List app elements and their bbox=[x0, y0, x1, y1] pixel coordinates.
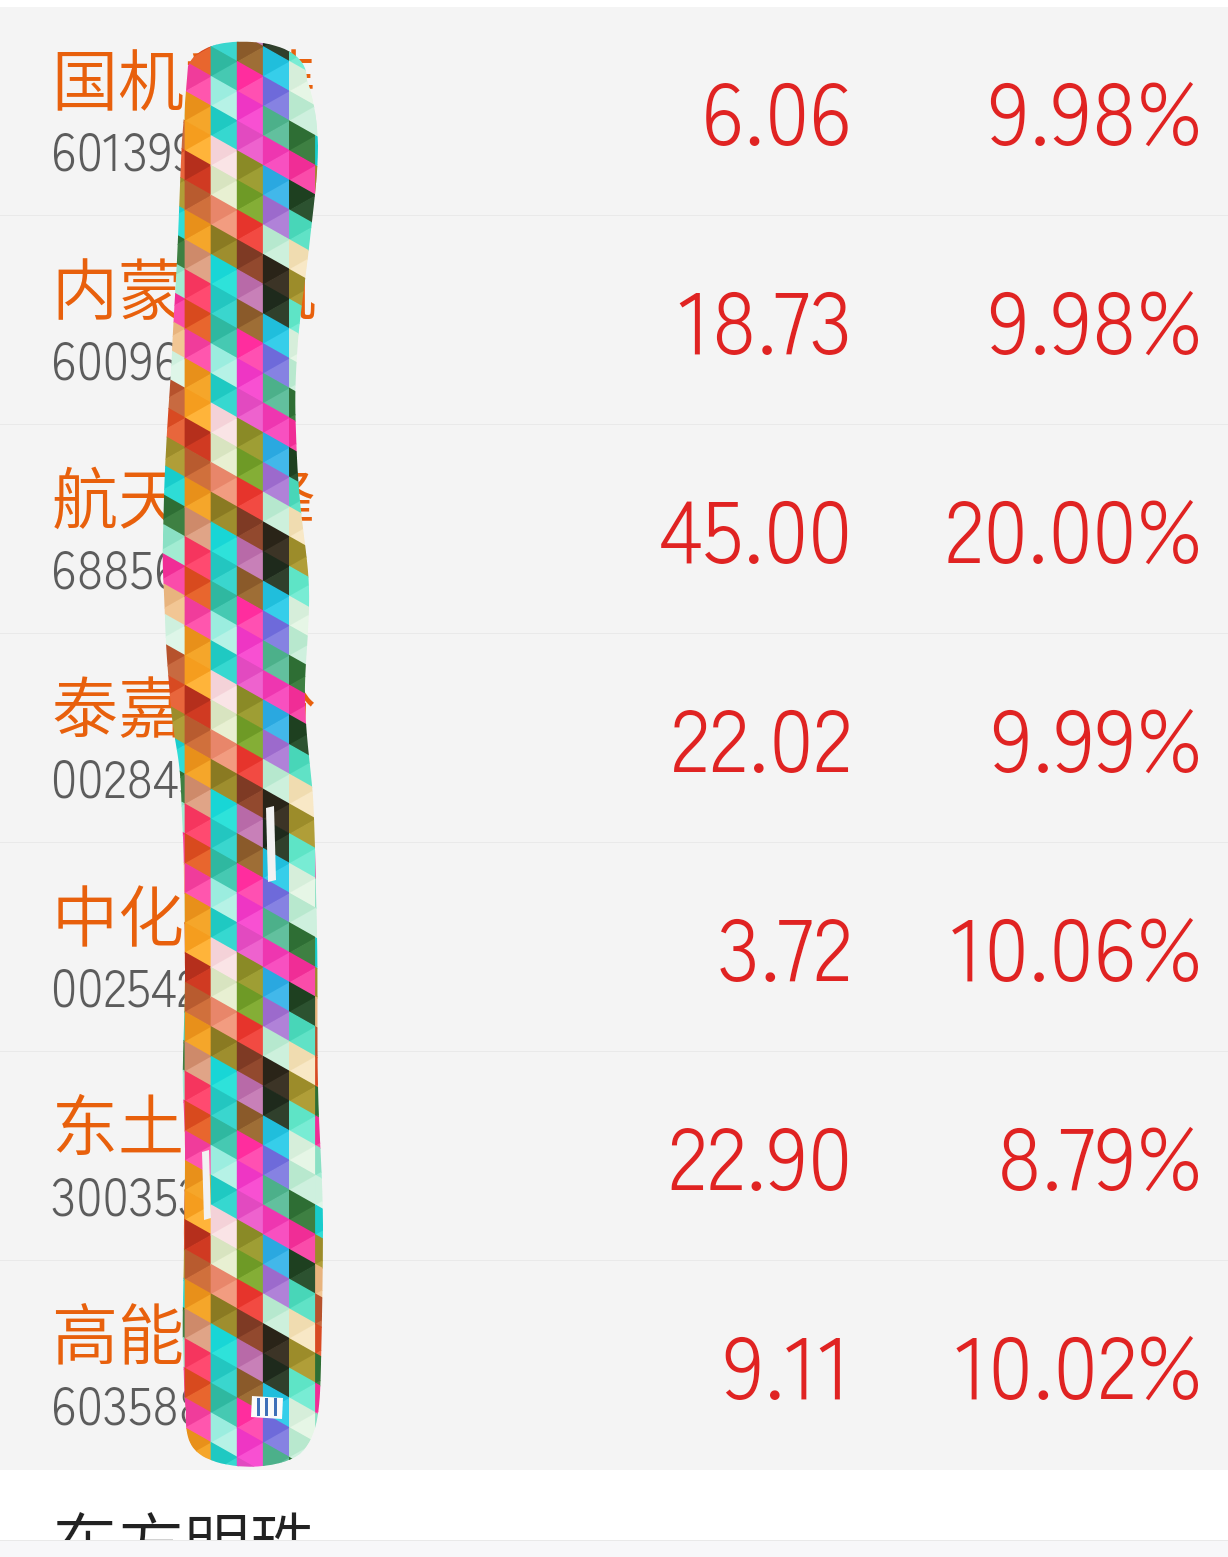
staticText: 东方明珠 bbox=[52, 1491, 316, 1557]
button[interactable]: 高能环境 bbox=[0, 1261, 1228, 1469]
staticText: 600967 bbox=[51, 320, 201, 395]
button[interactable]: 中化岩土 bbox=[0, 843, 1228, 1051]
staticText: 内蒙一机 bbox=[52, 237, 316, 333]
staticText: 20.00% bbox=[0, 462, 1203, 588]
staticText: 9.11 bbox=[0, 1298, 852, 1424]
staticText: 688568 bbox=[51, 529, 207, 604]
staticText: 高能环境 bbox=[52, 1282, 316, 1378]
staticText: 6.06 bbox=[0, 44, 852, 170]
staticText: 601399 bbox=[51, 111, 198, 186]
staticText: 9.99% bbox=[0, 671, 1203, 797]
staticText: 中化岩土 bbox=[52, 864, 316, 960]
staticText: 航天长峰 bbox=[52, 446, 316, 542]
staticText: 8.79% bbox=[0, 1089, 1203, 1215]
button[interactable]: 航天长峰 bbox=[0, 425, 1228, 633]
staticText: 45.00 bbox=[0, 462, 852, 588]
staticText: 300353 bbox=[51, 1156, 204, 1231]
button[interactable]: 内蒙一机 bbox=[0, 216, 1228, 424]
button[interactable]: 泰嘉股份 bbox=[0, 634, 1228, 842]
staticText: 603588 bbox=[51, 1365, 206, 1440]
staticText: 18.73 bbox=[0, 253, 852, 379]
staticText: 东土科技 bbox=[52, 1073, 316, 1169]
staticText: 002542 bbox=[51, 947, 200, 1022]
button[interactable]: 东土科技 bbox=[0, 1052, 1228, 1260]
staticText: 9.98% bbox=[0, 253, 1203, 379]
staticText: 9.98% bbox=[0, 44, 1203, 170]
staticText: 22.90 bbox=[0, 1089, 852, 1215]
staticText: 国机重装 bbox=[52, 28, 316, 124]
staticText: 3.72 bbox=[0, 880, 852, 1006]
button[interactable]: 国机重装 bbox=[0, 7, 1228, 215]
staticText: 泰嘉股份 bbox=[52, 655, 316, 751]
staticText: 002843 bbox=[51, 738, 204, 813]
staticText: 10.02% bbox=[0, 1298, 1203, 1424]
staticText: 22.02 bbox=[0, 671, 852, 797]
staticText: 10.06% bbox=[0, 880, 1203, 1006]
